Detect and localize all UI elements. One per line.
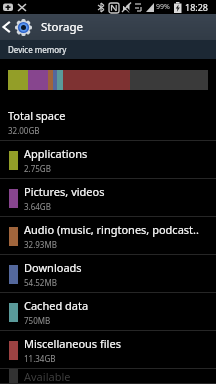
staticText: Downloads [24,260,82,275]
staticText: 99% [156,2,170,12]
staticText: Pictures, videos [24,184,105,199]
staticText: Miscellaneous files [24,336,121,351]
button[interactable]: Cached data [0,293,216,331]
staticText: Storage [41,19,83,35]
button[interactable]: Available [0,369,216,384]
button[interactable]: Pictures, videos [0,179,216,217]
staticText: 54.52MB [24,277,57,288]
staticText: Device memory [8,44,67,55]
staticText: Applications [24,146,88,161]
staticText: Audio (music, ringtones, podcast.. [24,222,199,237]
button[interactable]: Storage [0,14,216,40]
staticText: Total space [8,108,66,123]
staticText: 18:28 [185,1,209,13]
button[interactable]: Applications [0,141,216,179]
staticText: 32.00GB [8,125,40,136]
button[interactable]: Downloads [0,255,216,293]
button[interactable]: Total space [0,103,216,141]
staticText: 2.75GB [24,163,51,174]
staticText: 3.64GB [24,201,51,212]
staticText: 750MB [24,315,51,326]
staticText: Available [24,369,71,384]
staticText: Cached data [24,298,89,313]
button[interactable]: Audio (music, ringtones, podcast.. [0,217,216,255]
staticText: 32.93MB [24,239,57,250]
staticText: 11.34GB [24,353,56,364]
button[interactable]: Miscellaneous files [0,331,216,369]
